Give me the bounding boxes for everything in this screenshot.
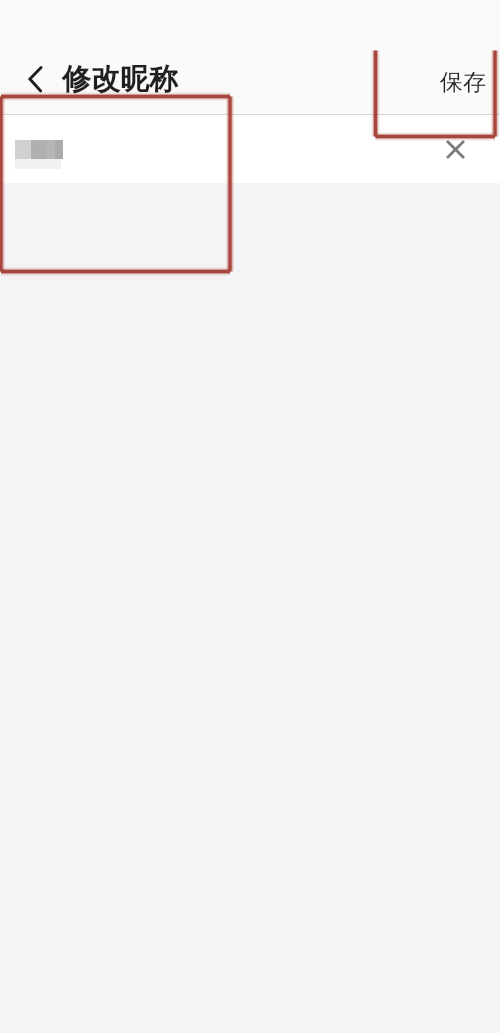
button[interactable]: Nickname input field bbox=[0, 115, 500, 183]
staticText: 保存 bbox=[440, 68, 486, 97]
button[interactable]: 保存 bbox=[430, 62, 496, 103]
button[interactable]: Clear bbox=[438, 132, 472, 166]
button[interactable]: Back bbox=[13, 57, 57, 101]
staticText: 修改昵称 bbox=[62, 61, 178, 98]
